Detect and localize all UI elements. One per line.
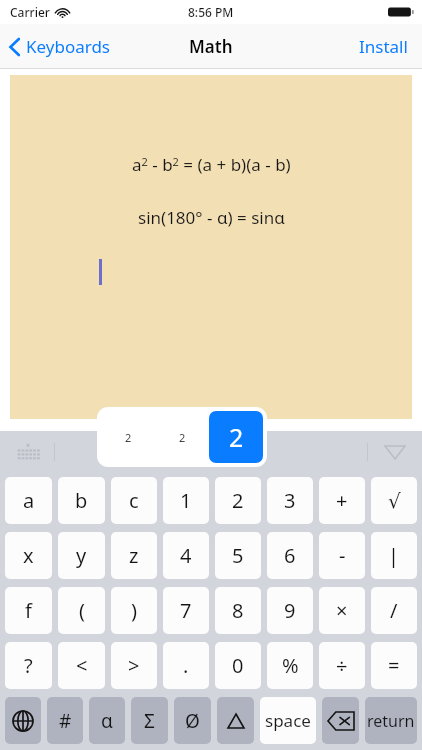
button[interactable]: ÷ — [319, 642, 365, 689]
staticText: 6 — [284, 542, 296, 569]
button[interactable]: Σ — [131, 697, 168, 744]
button[interactable]: x — [5, 532, 52, 579]
button[interactable]: α — [89, 697, 125, 744]
button[interactable]: Install — [345, 24, 422, 69]
button[interactable]: Keyboard settings — [14, 437, 44, 467]
staticText: α — [101, 708, 113, 734]
staticText: Math — [189, 35, 233, 58]
staticText: Σ — [144, 708, 155, 734]
button[interactable]: ( — [58, 587, 105, 634]
staticText: a2 - b2 = (a + b)(a - b) — [132, 153, 291, 176]
staticText: ÷ — [336, 652, 348, 679]
button[interactable]: 2 — [101, 411, 155, 463]
staticText: 2 — [229, 420, 244, 454]
button[interactable]: 1 — [163, 477, 209, 524]
staticText: Ø — [185, 708, 200, 734]
staticText: ( — [79, 597, 85, 624]
staticText: ? — [24, 652, 33, 679]
button[interactable]: Ø — [174, 697, 211, 744]
button[interactable]: f — [5, 587, 52, 634]
staticText: Carrier — [10, 4, 50, 20]
staticText: - — [339, 542, 346, 569]
button[interactable]: 6 — [267, 532, 313, 579]
button[interactable]: % — [267, 642, 313, 689]
button[interactable]: b — [58, 477, 105, 524]
button[interactable]: a — [5, 477, 52, 524]
button[interactable]: 2 — [215, 477, 261, 524]
button[interactable]: > — [111, 642, 157, 689]
staticText: 1 — [180, 487, 192, 514]
button[interactable]: | — [371, 532, 417, 579]
button[interactable]: c — [111, 477, 157, 524]
button[interactable]: √ — [371, 477, 417, 524]
button[interactable]: Hide keyboard — [380, 437, 410, 467]
staticText: x — [23, 542, 34, 569]
button[interactable]: z — [111, 532, 157, 579]
staticText: = — [388, 652, 400, 679]
button[interactable]: 8 — [215, 587, 261, 634]
staticText: √ — [388, 489, 401, 512]
button[interactable]: / — [371, 587, 417, 634]
staticText: space — [265, 709, 311, 732]
button[interactable]: ? — [5, 642, 52, 689]
button[interactable]: 0 — [215, 642, 261, 689]
staticText: 5 — [232, 542, 244, 569]
staticText: return — [367, 710, 415, 732]
staticText: Install — [359, 35, 408, 58]
staticText: > — [128, 652, 140, 679]
staticText: 2 — [125, 430, 132, 445]
staticText: b — [75, 487, 88, 514]
button[interactable]: 3 — [267, 477, 313, 524]
staticText: sin(180° - α) = sinα — [138, 206, 285, 229]
staticText: z — [129, 542, 139, 569]
staticText: % — [282, 652, 299, 679]
staticText: 2 — [179, 430, 186, 445]
button[interactable]: × — [319, 587, 365, 634]
button[interactable]: Keyboards — [0, 24, 120, 69]
staticText: c — [129, 487, 139, 514]
staticText: 9 — [284, 597, 296, 624]
button[interactable]: 9 — [267, 587, 313, 634]
button[interactable]: return — [365, 697, 417, 744]
staticText: 8:56 PM — [188, 4, 234, 20]
button[interactable]: Delta — [217, 697, 254, 744]
button[interactable]: 2 — [209, 411, 263, 463]
staticText: Keyboards — [26, 35, 110, 58]
staticText: f — [25, 597, 32, 624]
button[interactable]: < — [58, 642, 105, 689]
button[interactable]: 5 — [215, 532, 261, 579]
button[interactable]: 7 — [163, 587, 209, 634]
staticText: 3 — [284, 487, 296, 514]
staticText: a — [23, 487, 35, 514]
button[interactable]: y — [58, 532, 105, 579]
staticText: 7 — [180, 597, 192, 624]
button[interactable]: space — [260, 697, 316, 744]
button[interactable]: Switch keyboard — [5, 697, 41, 744]
button[interactable]: + — [319, 477, 365, 524]
staticText: ) — [131, 597, 137, 624]
staticText: | — [388, 542, 400, 569]
staticText: y — [76, 542, 87, 569]
staticText: / — [390, 597, 398, 624]
button[interactable]: Backspace — [322, 697, 359, 744]
button[interactable]: . — [163, 642, 209, 689]
staticText: 2 — [232, 487, 244, 514]
staticText: 0 — [232, 652, 244, 679]
staticText: 4 — [180, 542, 192, 569]
staticText: < — [76, 652, 88, 679]
button[interactable]: ) — [111, 587, 157, 634]
button[interactable]: = — [371, 642, 417, 689]
staticText: 8 — [232, 597, 244, 624]
button[interactable]: 4 — [163, 532, 209, 579]
staticText: + — [336, 487, 348, 514]
staticText: . — [183, 652, 189, 679]
button[interactable]: - — [319, 532, 365, 579]
staticText: # — [59, 708, 72, 734]
button[interactable]: 2 — [155, 411, 209, 463]
button[interactable]: # — [47, 697, 83, 744]
staticText: × — [336, 597, 348, 624]
